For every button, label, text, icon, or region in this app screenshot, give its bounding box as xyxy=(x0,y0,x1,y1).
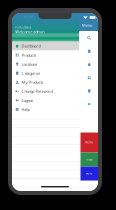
button[interactable]: Products xyxy=(12,50,79,60)
button[interactable]: Menu xyxy=(77,22,97,28)
staticText: Locations xyxy=(21,61,37,67)
staticText: More xyxy=(86,172,93,175)
button[interactable]: Apps xyxy=(81,71,98,84)
staticText: Categories xyxy=(21,70,40,76)
button[interactable]: Locations xyxy=(12,60,79,69)
button[interactable]: Home xyxy=(81,58,98,71)
staticText: Change Password xyxy=(21,89,52,94)
button[interactable]: Change Password xyxy=(12,87,79,96)
button[interactable]: Documents xyxy=(81,45,98,58)
staticText: Dashboard xyxy=(21,43,40,49)
button[interactable]: Dashboard xyxy=(12,41,79,51)
button[interactable]: Help xyxy=(12,105,79,114)
staticText: Products xyxy=(21,52,36,58)
button[interactable]: Logout xyxy=(12,96,79,105)
staticText: View xyxy=(86,158,92,161)
staticText: PerfectMeal xyxy=(15,26,31,29)
button[interactable]: More xyxy=(80,166,98,180)
staticText: Hello xyxy=(85,141,93,144)
button[interactable]: List xyxy=(81,84,98,97)
button[interactable]: Categories xyxy=(12,69,79,78)
staticText: Menu xyxy=(82,23,92,28)
staticText: Help xyxy=(21,107,29,112)
button[interactable]: Download xyxy=(81,97,98,111)
staticText: My Products xyxy=(21,80,43,85)
button[interactable]: Search xyxy=(81,31,98,45)
button[interactable]: Hello xyxy=(80,132,98,152)
staticText: Welcome admin xyxy=(15,29,44,34)
staticText: 11:07 xyxy=(23,15,32,20)
staticText: Logout xyxy=(21,98,32,103)
button[interactable]: View xyxy=(80,152,98,166)
button[interactable]: My Products xyxy=(12,78,79,87)
